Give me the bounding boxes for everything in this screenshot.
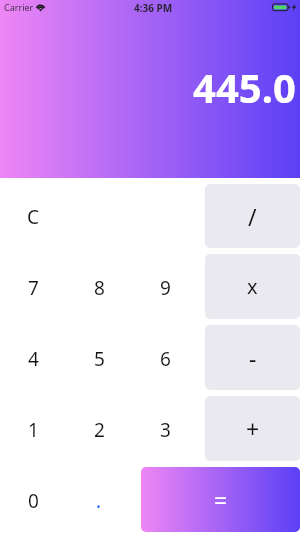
button[interactable]: / [205,184,300,248]
button[interactable]: 2 [66,393,132,464]
staticText: / [248,201,257,232]
staticText: 0 [28,488,39,514]
button[interactable]: 7 [0,251,66,322]
button[interactable]: - [205,325,300,390]
staticText: Carrier [4,1,34,13]
button[interactable]: x [205,254,300,319]
staticText: 8 [94,275,105,301]
button[interactable]: C [0,181,66,251]
staticText: 5 [94,346,105,372]
staticText: x [247,273,258,300]
staticText: 4 [28,346,39,372]
staticText: . [96,488,102,514]
staticText: 445.0 [193,60,296,114]
staticText: 4:36 PM [134,1,173,15]
button[interactable]: 8 [66,251,132,322]
staticText: C [27,204,40,230]
staticText: 1 [28,417,39,443]
button[interactable]: . [66,464,132,533]
staticText: 7 [28,275,39,301]
staticText: 2 [94,417,105,443]
staticText: + [246,413,260,444]
button[interactable]: 9 [132,251,198,322]
staticText: = [214,484,228,515]
button[interactable]: 4 [0,322,66,393]
button[interactable]: 0 [0,464,66,533]
staticText: 6 [160,346,171,372]
button[interactable]: 1 [0,393,66,464]
button[interactable]: 3 [132,393,198,464]
staticText: - [249,342,257,373]
button[interactable]: = [141,467,300,532]
other: Wi-Fi signal [36,4,45,11]
staticText: 9 [160,275,171,301]
button[interactable]: 6 [132,322,198,393]
other: Battery charging [272,3,296,11]
staticText: 3 [160,417,171,443]
button[interactable]: + [205,396,300,461]
button[interactable]: 5 [66,322,132,393]
